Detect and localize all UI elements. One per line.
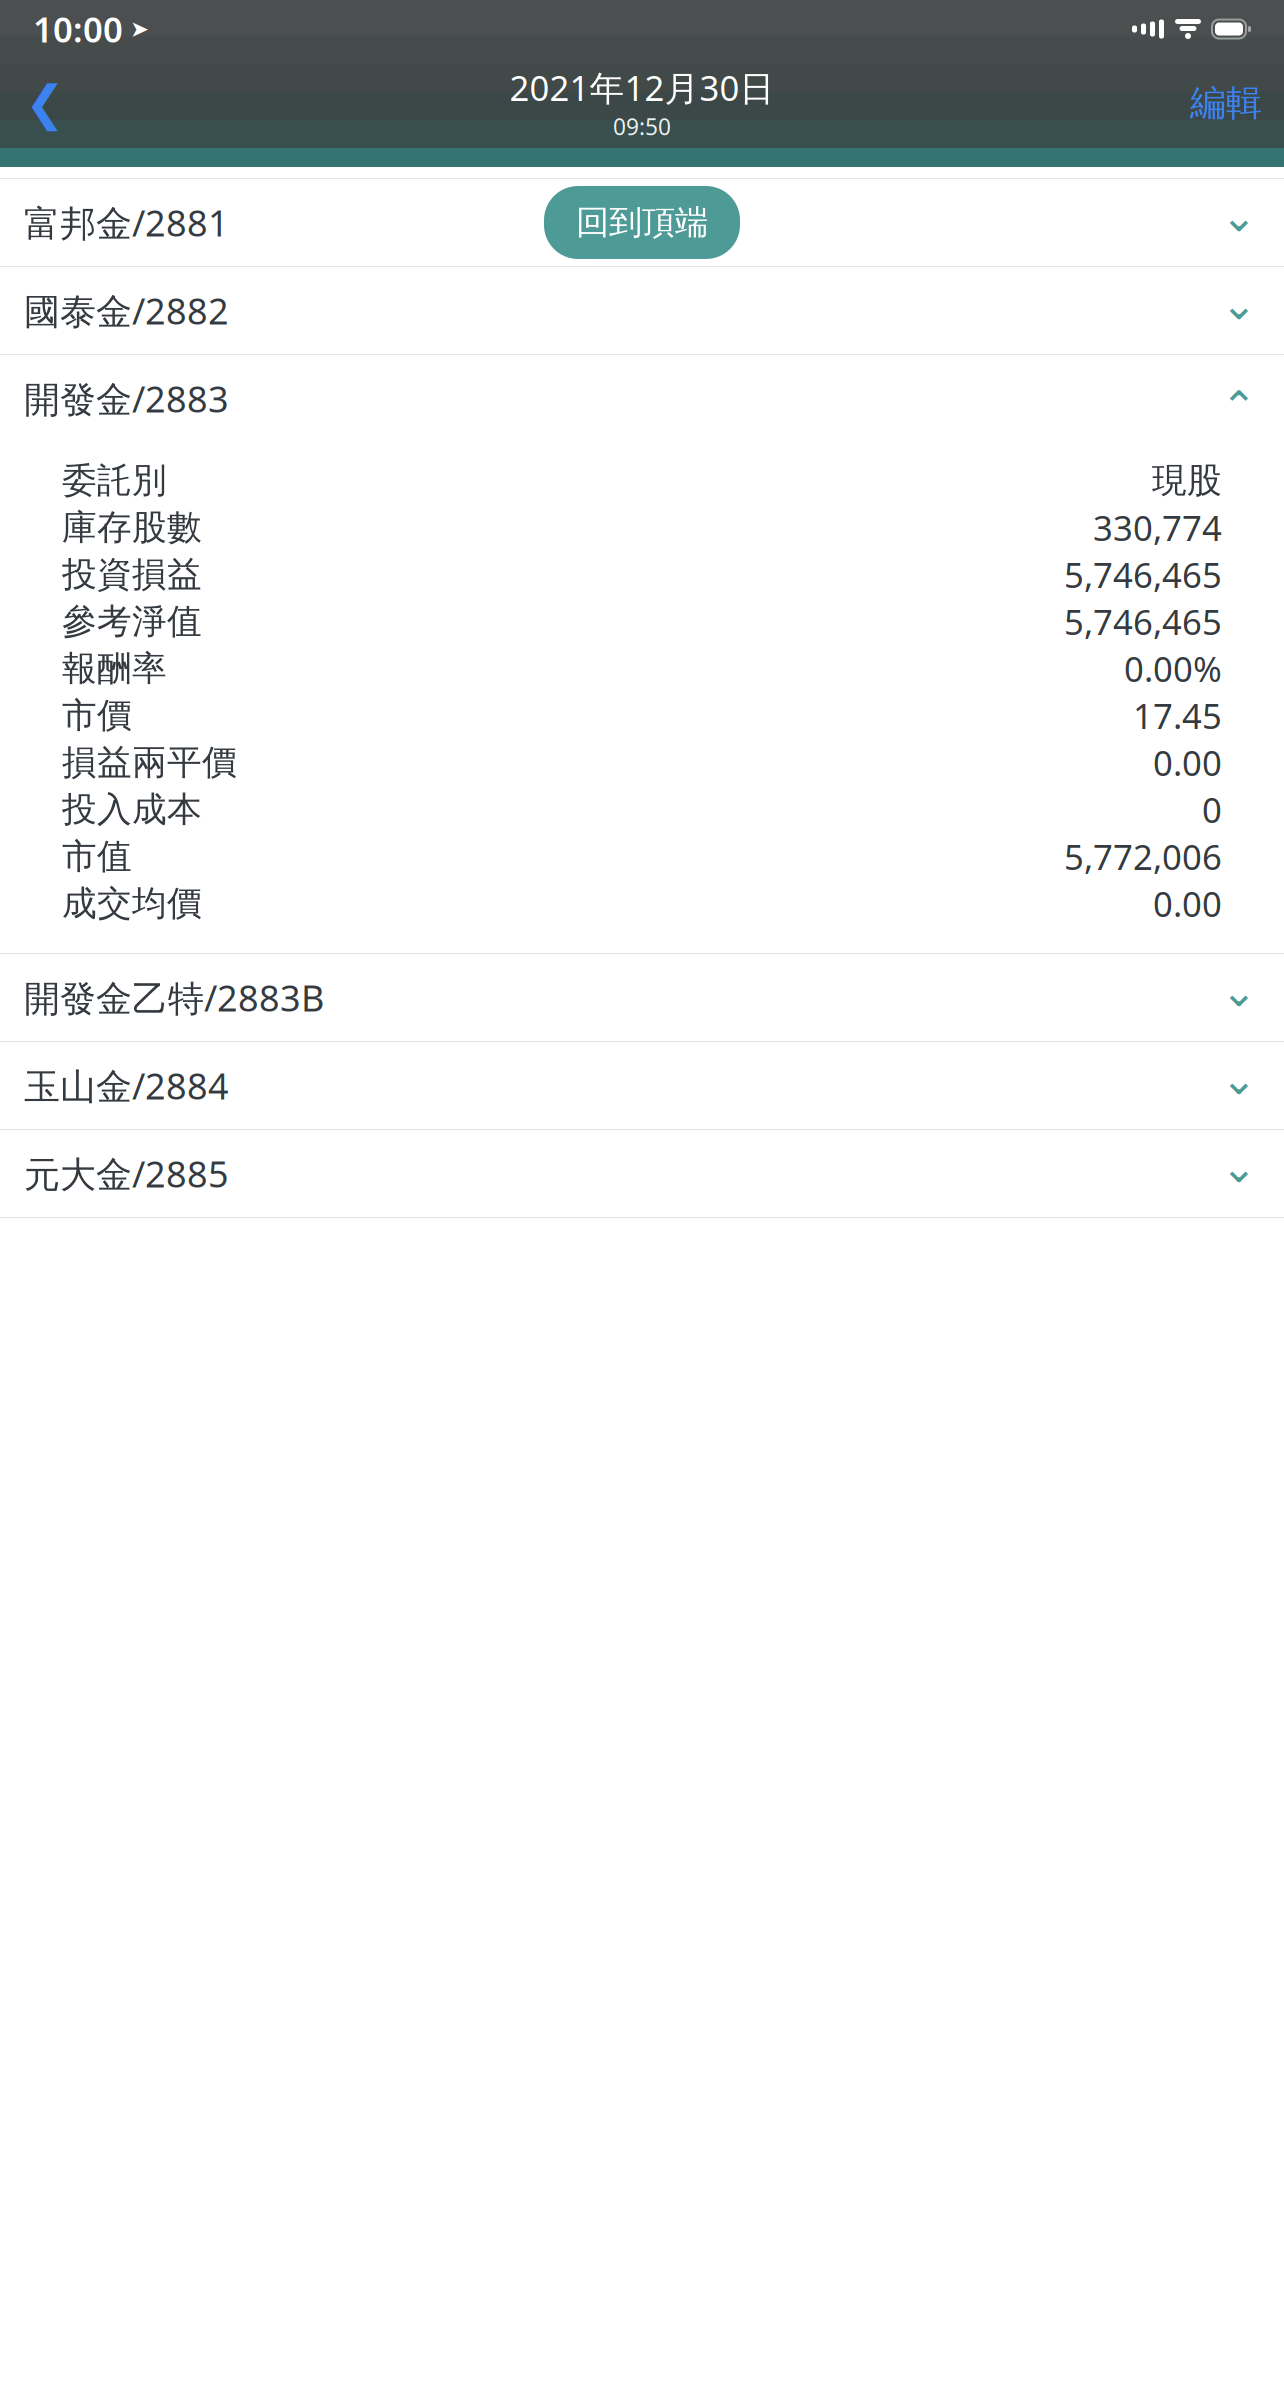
staticText: 開發金/2883 bbox=[24, 375, 229, 422]
staticText: 市值 bbox=[62, 835, 132, 878]
staticText: 0.00% bbox=[1124, 645, 1222, 691]
staticText: 現股 bbox=[1152, 459, 1222, 502]
staticText: 投資損益 bbox=[62, 553, 202, 596]
staticText: 開發金乙特/2883B bbox=[24, 974, 324, 1021]
staticText: 0.00 bbox=[1153, 739, 1222, 785]
staticText: 元大金/2885 bbox=[24, 1150, 229, 1197]
button[interactable]: 元大金/2885 bbox=[0, 1130, 1284, 1217]
staticText: 投入成本 bbox=[62, 788, 202, 831]
button[interactable]: 富邦金/2881 bbox=[0, 179, 1284, 266]
staticText: 委託別 bbox=[62, 459, 167, 502]
staticText: 330,774 bbox=[1093, 504, 1222, 550]
staticText: 成交均價 bbox=[62, 882, 202, 925]
staticText: 報酬率 bbox=[62, 647, 167, 690]
staticText: ⌄ bbox=[1221, 1055, 1257, 1104]
staticText: 2021年12月30日 bbox=[509, 64, 774, 110]
staticText: 0.00 bbox=[1153, 880, 1222, 926]
staticText: 市價 bbox=[62, 694, 132, 737]
staticText: 09:50 bbox=[613, 111, 671, 142]
staticText: ➤ bbox=[130, 16, 149, 42]
staticText: ⌄ bbox=[1221, 1143, 1257, 1192]
staticText: 5,746,465 bbox=[1064, 551, 1222, 597]
staticText: 編輯 bbox=[1190, 81, 1262, 125]
button[interactable]: 開發金乙特/2883B bbox=[0, 954, 1284, 1041]
staticText: 10:00 bbox=[33, 6, 123, 52]
staticText: 5,746,465 bbox=[1064, 598, 1222, 644]
staticText: 參考淨值 bbox=[62, 600, 202, 643]
staticText: ❮ bbox=[25, 76, 65, 130]
staticText: 國泰金/2882 bbox=[24, 287, 229, 334]
button[interactable]: 國泰金/2882 bbox=[0, 267, 1284, 354]
button[interactable]: 開發金/2883 bbox=[0, 355, 1284, 442]
staticText: ⌄ bbox=[1221, 192, 1257, 241]
staticText: 0 bbox=[1202, 786, 1222, 832]
staticText: ⌄ bbox=[1221, 280, 1257, 329]
button[interactable]: 回到頂端 bbox=[544, 186, 740, 259]
staticText: 17.45 bbox=[1133, 692, 1222, 738]
staticText: ⌄ bbox=[1221, 967, 1257, 1016]
staticText: 庫存股數 bbox=[62, 506, 202, 549]
staticText: 玉山金/2884 bbox=[24, 1062, 229, 1109]
button[interactable]: Back bbox=[14, 72, 76, 134]
button[interactable]: 玉山金/2884 bbox=[0, 1042, 1284, 1129]
staticText: 回到頂端 bbox=[576, 202, 708, 243]
button[interactable]: 編輯 bbox=[1182, 72, 1270, 134]
staticText: 5,772,006 bbox=[1064, 833, 1222, 879]
staticText: ⌃ bbox=[1221, 382, 1257, 431]
staticText: 富邦金/2881 bbox=[24, 199, 229, 246]
staticText: 損益兩平價 bbox=[62, 741, 237, 784]
